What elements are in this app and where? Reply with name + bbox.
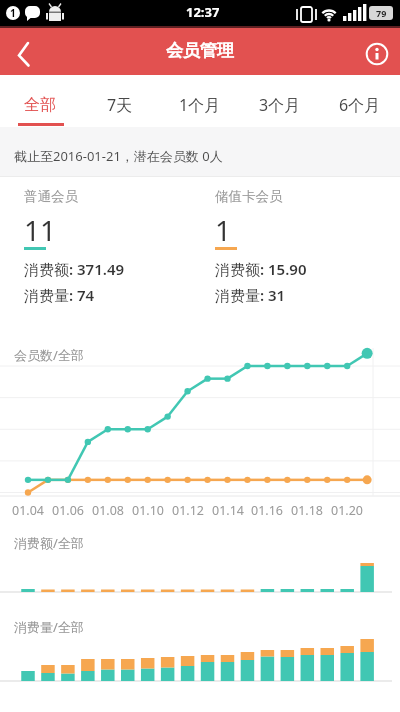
staticText: 01.16 xyxy=(251,502,283,518)
button[interactable]: 全部 xyxy=(0,75,80,126)
staticText: 消费额: 371.49 xyxy=(24,259,125,279)
button[interactable]: 7天 xyxy=(80,75,160,126)
staticText: 01.18 xyxy=(291,502,323,518)
staticText: 12:37 xyxy=(186,3,220,21)
staticText: 01.14 xyxy=(212,502,244,518)
staticText: 截止至2016-01-21，潜在会员数 0人 xyxy=(14,147,223,165)
staticText: 消费量: 31 xyxy=(215,285,286,305)
button[interactable]: 3个月 xyxy=(240,75,320,126)
staticText: 会员数/全部 xyxy=(14,346,84,364)
staticText: 消费量/全部 xyxy=(14,618,84,636)
staticText: 消费额/全部 xyxy=(14,534,84,552)
button[interactable] xyxy=(4,34,44,74)
staticText: 01.20 xyxy=(331,502,363,518)
staticText: 消费额: 15.90 xyxy=(215,259,307,279)
button[interactable] xyxy=(357,34,397,74)
staticText: 1个月 xyxy=(179,94,221,116)
staticText: 1 xyxy=(10,6,16,20)
staticText: 01.06 xyxy=(52,502,84,518)
staticText: 01.08 xyxy=(92,502,124,518)
staticText: 1 xyxy=(215,211,232,249)
staticText: 普通会员 xyxy=(24,188,78,205)
staticText: 消费量: 74 xyxy=(24,285,95,305)
button[interactable]: 6个月 xyxy=(320,75,400,126)
staticText: 79 xyxy=(376,7,387,19)
staticText: 7天 xyxy=(107,94,133,116)
staticText: 01.04 xyxy=(12,502,44,518)
staticText: 01.10 xyxy=(132,502,164,518)
staticText: 01.12 xyxy=(172,502,204,518)
staticText: 储值卡会员 xyxy=(215,188,283,205)
button[interactable]: 1个月 xyxy=(160,75,240,126)
staticText: 11 xyxy=(24,211,57,249)
staticText: 3个月 xyxy=(259,94,301,116)
staticText: 6个月 xyxy=(339,94,381,116)
staticText: 会员管理 xyxy=(166,40,234,61)
staticText: 全部 xyxy=(24,95,56,115)
